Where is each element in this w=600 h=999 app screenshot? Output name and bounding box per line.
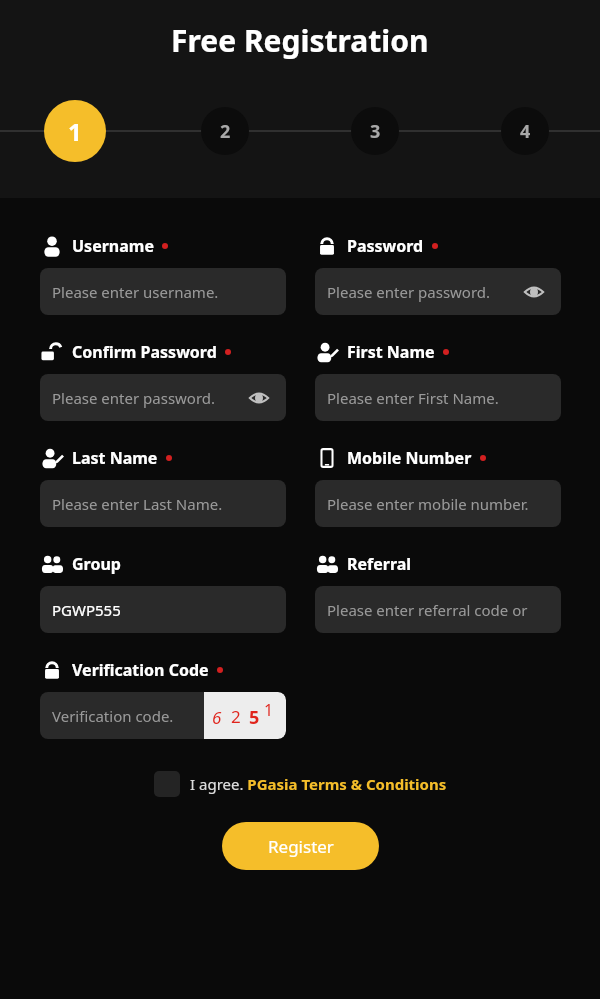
button[interactable]: Please enter password. — [40, 374, 286, 421]
staticText: Password — [347, 235, 424, 257]
staticText: Username — [72, 235, 154, 257]
button[interactable]: Refresh captcha — [204, 692, 286, 739]
button[interactable]: Show password — [521, 279, 547, 305]
staticText: Please enter password. — [52, 388, 216, 408]
staticText: Please enter mobile number. — [327, 494, 529, 514]
staticText: PGWP555 — [52, 600, 121, 620]
staticText: Group — [72, 553, 121, 575]
button[interactable]: Please enter referral code or leave it b… — [315, 586, 561, 633]
staticText: 6 — [212, 706, 222, 729]
button[interactable]: 2 — [201, 107, 249, 155]
button[interactable]: Please enter mobile number. — [315, 480, 561, 527]
staticText: Please enter First Name. — [327, 388, 499, 408]
staticText: Confirm Password — [72, 341, 217, 363]
button[interactable]: I agree. PGasia Terms & Conditions — [190, 774, 447, 794]
button[interactable]: Register — [222, 822, 379, 870]
staticText: Mobile Number — [347, 447, 472, 469]
staticText: 5 — [249, 705, 260, 730]
staticText: Verification Code — [72, 659, 209, 681]
staticText: First Name — [347, 341, 435, 363]
button[interactable]: 1 — [44, 100, 106, 162]
button[interactable]: Please enter First Name. — [315, 374, 561, 421]
staticText: Please enter Last Name. — [52, 494, 223, 514]
staticText: Free Registration — [171, 20, 429, 61]
button[interactable]: Show password — [246, 385, 272, 411]
staticText: Register — [268, 835, 334, 858]
staticText: 4 — [520, 119, 531, 144]
button[interactable]: PGWP555 — [40, 586, 286, 633]
button[interactable]: Please enter Last Name. — [40, 480, 286, 527]
button[interactable]: 4 — [501, 107, 549, 155]
staticText: Please enter password. — [327, 282, 491, 302]
staticText: 2 — [220, 119, 231, 144]
button[interactable]: Please enter username. — [40, 268, 286, 315]
staticText: Please enter referral code or leave it b… — [327, 600, 557, 620]
button[interactable]: Please enter password. — [315, 268, 561, 315]
staticText: Referral — [347, 553, 412, 575]
staticText: 2 — [231, 705, 241, 728]
staticText: Please enter username. — [52, 282, 219, 302]
staticText: 1 — [68, 115, 82, 148]
staticText: 3 — [370, 119, 381, 144]
staticText: 1 — [264, 699, 274, 721]
button[interactable]: 3 — [351, 107, 399, 155]
button[interactable]: I agree checkbox — [154, 771, 180, 797]
staticText: Last Name — [72, 447, 158, 469]
staticText: I agree. PGasia Terms & Conditions — [190, 774, 447, 794]
button[interactable]: Verification code. — [40, 692, 286, 739]
staticText: Verification code. — [52, 706, 174, 726]
